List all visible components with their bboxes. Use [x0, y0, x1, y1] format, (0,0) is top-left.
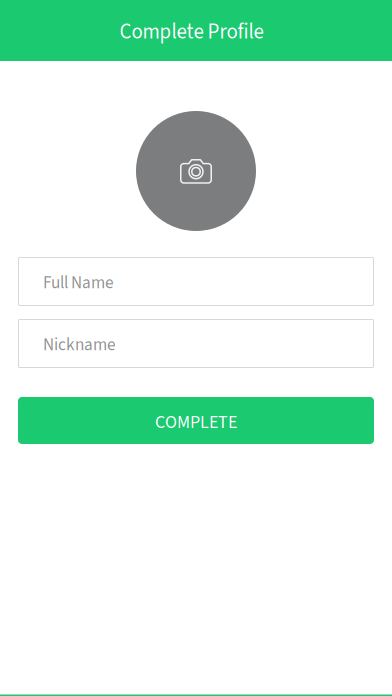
button[interactable]: Choose profile photo — [136, 111, 256, 231]
staticText: COMPLETE — [155, 410, 237, 435]
button[interactable]: Full Name — [18, 257, 374, 306]
button[interactable]: Nickname — [18, 319, 374, 368]
staticText: Full Name — [43, 271, 114, 295]
button[interactable]: COMPLETE — [18, 397, 374, 444]
staticText: Complete Profile — [119, 17, 263, 47]
staticText: Nickname — [43, 333, 116, 357]
